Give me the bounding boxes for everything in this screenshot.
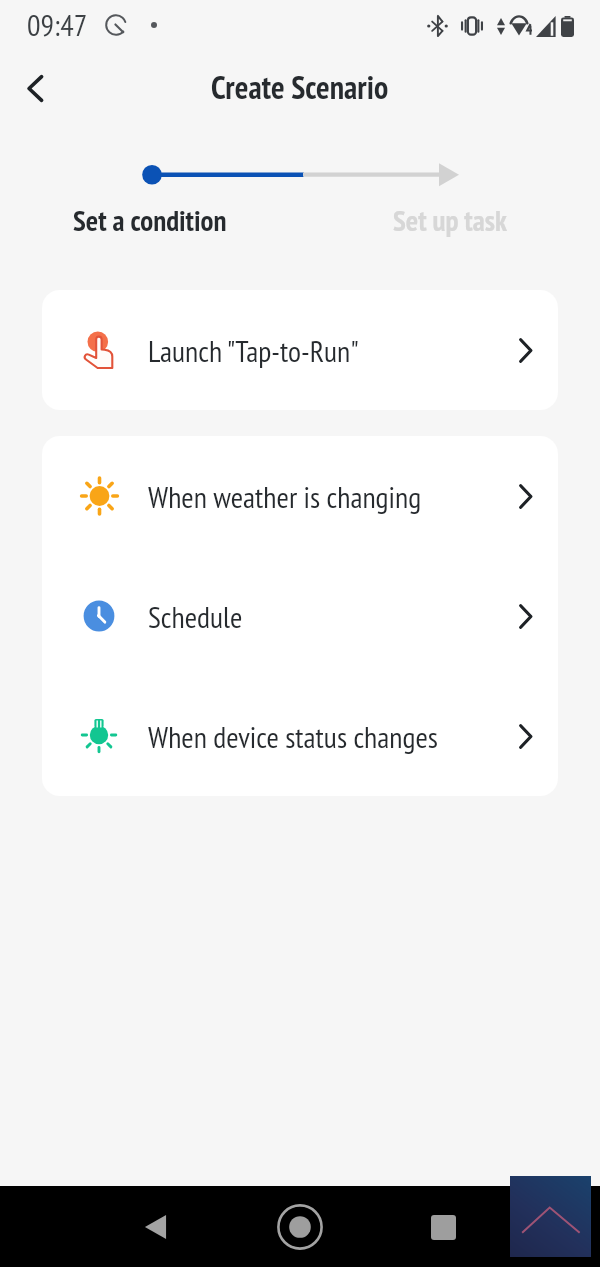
button[interactable]: Recent apps (420, 1204, 466, 1250)
button[interactable]: Launch "Tap-to-Run" (42, 290, 558, 410)
button[interactable]: Back (11, 64, 59, 112)
staticText: Create Scenario (211, 66, 389, 107)
staticText: Set a condition (73, 201, 227, 239)
button[interactable]: Schedule (42, 556, 558, 676)
button[interactable]: When weather is changing (42, 436, 558, 556)
staticText: When device status changes (148, 717, 438, 756)
staticText: Set up task (393, 201, 507, 239)
staticText: Launch "Tap-to-Run" (148, 331, 359, 370)
button[interactable]: When device status changes (42, 676, 558, 796)
button[interactable]: Home (274, 1201, 326, 1253)
button[interactable]: Back (132, 1204, 178, 1250)
staticText: Schedule (148, 597, 243, 636)
staticText: 09:47 (27, 5, 88, 44)
staticText: When weather is changing (148, 477, 422, 516)
